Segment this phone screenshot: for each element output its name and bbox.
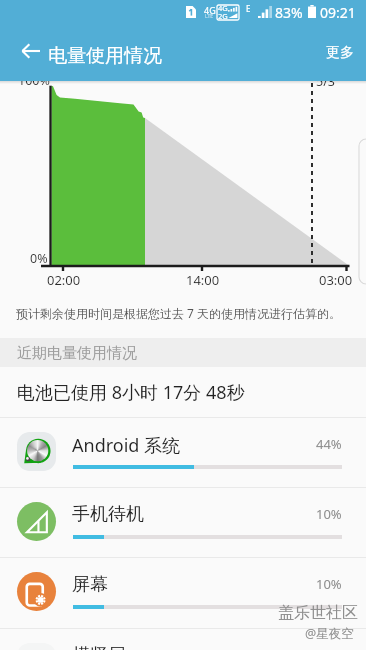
staticText: 电池已使用 8小时 17分 48秒 (17, 380, 245, 405)
staticText: E (246, 3, 251, 14)
button[interactable]: Back (8, 29, 52, 73)
staticText: 03:00 (319, 271, 353, 289)
button[interactable]: 电池已使用 8小时 17分 48秒 (0, 367, 366, 417)
staticText: 盖乐世社区 (278, 603, 358, 623)
staticText: Android 系统 (72, 433, 181, 458)
staticText: 02:00 (47, 271, 81, 289)
staticText: 预计剩余使用时间是根据您过去 7 天的使用情况进行估算的。 (16, 305, 342, 321)
staticText: 4G (204, 4, 216, 16)
staticText: 83% (275, 3, 303, 22)
staticText: 电量使用情况 (48, 44, 162, 68)
staticText: @星夜空 (305, 625, 354, 642)
staticText: 10% (316, 505, 342, 523)
staticText: 5/3 (316, 73, 335, 90)
staticText: 10% (316, 575, 342, 593)
staticText: 近期电量使用情况 (17, 344, 137, 363)
staticText: 14:00 (186, 271, 220, 289)
staticText: 44% (316, 435, 342, 453)
button[interactable]: 横竖屏 (0, 628, 366, 650)
button[interactable]: 更多 (318, 33, 366, 73)
staticText: 2G (218, 11, 228, 21)
button[interactable]: 手机待机 (0, 487, 366, 557)
staticText: 0% (30, 250, 48, 267)
staticText: 更多 (326, 44, 354, 62)
staticText: 4G (218, 3, 228, 13)
staticText: 100% (18, 72, 50, 89)
button[interactable]: 屏幕 (0, 557, 366, 627)
staticText: 横竖屏 (72, 644, 126, 650)
staticText: 手机待机 (72, 503, 144, 526)
staticText: 09:21 (320, 3, 356, 22)
staticText: LTE (205, 13, 214, 20)
button[interactable]: Android 系统 (0, 417, 366, 487)
staticText: 屏幕 (72, 573, 108, 596)
